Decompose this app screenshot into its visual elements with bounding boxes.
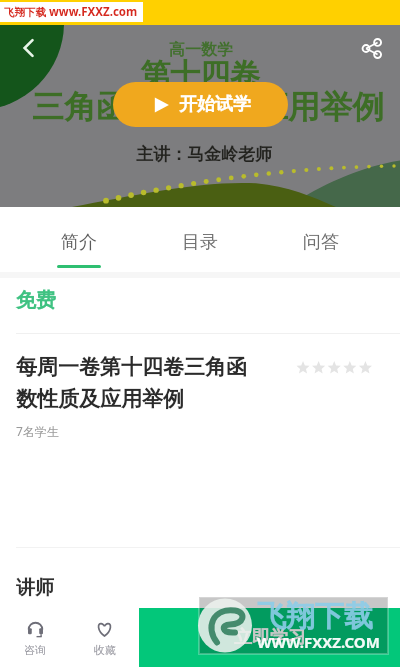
staticText: 开始试学 — [179, 93, 251, 116]
staticText: 收藏 — [94, 643, 116, 657]
staticText: 简介 — [61, 231, 97, 254]
staticText: 讲师 — [16, 576, 54, 600]
staticText: 主讲：马金岭老师 — [136, 144, 272, 165]
staticText: 三角函数性质及应用举例 — [32, 87, 384, 127]
staticText: 高一数学 — [169, 40, 233, 60]
staticText: 咨询 — [24, 643, 46, 657]
button[interactable]: 简介 — [19, 207, 139, 272]
staticText: 7名学生 — [16, 423, 59, 439]
button[interactable]: Back — [12, 31, 46, 65]
staticText: 立即学习 — [234, 626, 306, 649]
staticText: 飞翔下载 — [4, 6, 46, 19]
button[interactable]: 收藏 — [70, 608, 139, 667]
button[interactable]: 立即学习 — [139, 608, 400, 667]
button[interactable]: 问答 — [260, 207, 381, 272]
staticText: 问答 — [303, 231, 339, 254]
staticText: WWW.FXXZ.COM — [257, 632, 380, 652]
staticText: 第十四卷 — [140, 56, 260, 94]
button[interactable]: 开始试学 — [113, 82, 288, 127]
staticText: 目录 — [182, 231, 218, 254]
button[interactable]: Share — [354, 31, 388, 65]
staticText: 免费 — [16, 288, 56, 313]
button[interactable]: 咨询 — [0, 608, 70, 667]
button[interactable]: 目录 — [139, 207, 260, 272]
staticText: www.FXXZ.com — [49, 4, 138, 20]
staticText: 飞翔下载 — [257, 598, 373, 635]
staticText: 每周一卷第十四卷三角函数性质及应用举例 — [16, 354, 260, 412]
